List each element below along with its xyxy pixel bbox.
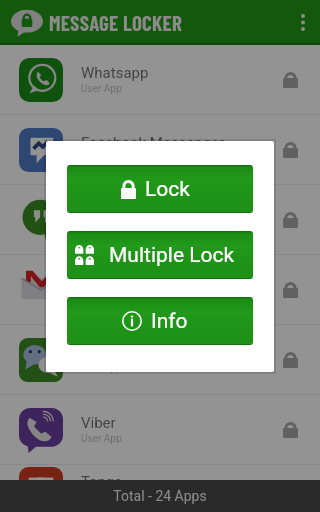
staticText: Info (151, 309, 188, 334)
staticText: Multiple Lock (109, 243, 235, 268)
staticText: User App (81, 433, 122, 445)
button[interactable]: Multiple Lock (67, 231, 253, 279)
staticText: User App (81, 293, 122, 305)
staticText: Facebook Messenger (81, 134, 225, 152)
button[interactable]: Lock (67, 165, 253, 213)
staticText: Whatsapp (81, 64, 149, 82)
button[interactable]: More options (287, 0, 319, 45)
staticText: WeChat (81, 344, 134, 362)
staticText: User App (81, 492, 122, 504)
button[interactable]: Hangouts (0, 185, 320, 255)
button[interactable]: Info (67, 297, 253, 345)
button[interactable]: Tango (0, 465, 320, 512)
staticText: MESSAGE LOCKER (49, 10, 183, 35)
button[interactable]: Viber (0, 395, 320, 465)
staticText: Lock (145, 177, 190, 202)
staticText: Hangouts (81, 204, 147, 222)
staticText: Total - 24 Apps (113, 488, 207, 504)
staticText: Tango (81, 473, 123, 491)
staticText: Viber (81, 414, 116, 432)
staticText: User App (81, 83, 122, 95)
staticText: User App (81, 223, 122, 235)
button[interactable]: WeChat (0, 325, 320, 395)
button[interactable]: Facebook Messenger (0, 115, 320, 185)
staticText: User App (81, 363, 122, 375)
button[interactable]: Gmail (0, 255, 320, 325)
staticText: Gmail (81, 274, 120, 292)
button[interactable]: Whatsapp (0, 45, 320, 115)
